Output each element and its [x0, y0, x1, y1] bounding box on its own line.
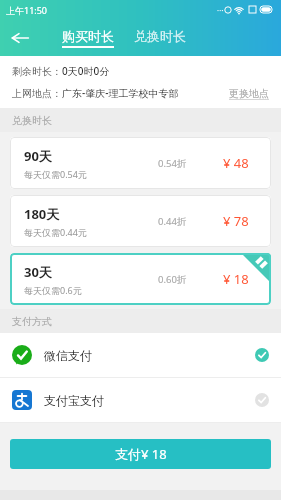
staticText: ¥ 78	[223, 212, 249, 230]
staticText: 剩余时长：	[12, 65, 62, 78]
button[interactable]: 支付宝支付	[0, 378, 281, 422]
staticText: 每天仅需0.44元	[24, 226, 87, 238]
staticText: ¥ 18	[223, 270, 249, 288]
button[interactable]: 支付¥ 18	[10, 439, 271, 469]
staticText: 支付宝支付	[44, 393, 104, 408]
staticText: 0.54折	[158, 157, 187, 170]
staticText: 购买时长	[62, 28, 114, 44]
button[interactable]: 购买时长	[62, 28, 114, 48]
staticText: 每天仅需0.54元	[24, 168, 87, 180]
button[interactable]: 兑换时长	[134, 28, 186, 49]
staticText: 支付¥ 18	[115, 445, 167, 463]
staticText: 上午11:50	[6, 4, 48, 16]
button[interactable]: 90天	[10, 137, 271, 189]
staticText: 0.60折	[158, 273, 187, 286]
button[interactable]: Back	[0, 20, 40, 56]
button[interactable]: 更换地点	[227, 87, 271, 100]
button[interactable]: 180天	[10, 195, 271, 247]
staticText: ¥ 48	[223, 154, 249, 172]
staticText: 0天0时0分	[62, 64, 110, 78]
staticText: 90天	[24, 147, 52, 165]
staticText: 兑换时长	[134, 28, 186, 44]
staticText: 广东-肇庆-理工学校中专部	[62, 86, 179, 100]
staticText: 每天仅需0.6元	[24, 284, 82, 296]
staticText: 30天	[24, 263, 52, 281]
staticText: 更换地点	[229, 87, 269, 100]
staticText: 上网地点：	[12, 87, 62, 100]
staticText: 180天	[24, 205, 60, 223]
button[interactable]: 微信支付	[0, 333, 281, 377]
button[interactable]: 30天	[10, 253, 271, 305]
staticText: 支付方式	[12, 315, 52, 328]
staticText: 微信支付	[44, 348, 92, 363]
staticText: 0.44折	[158, 215, 187, 228]
staticText: 兑换时长	[12, 114, 52, 127]
